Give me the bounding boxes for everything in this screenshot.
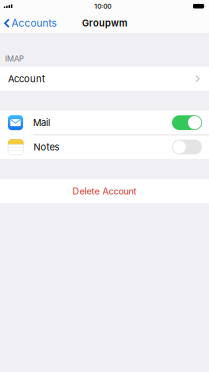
- button[interactable]: Delete Account: [0, 179, 209, 203]
- button[interactable]: Notes: [0, 135, 209, 159]
- button[interactable]: Mail: [0, 111, 209, 135]
- staticText: Notes: [34, 141, 60, 153]
- staticText: 10:00: [94, 2, 111, 10]
- staticText: Delete Account: [72, 186, 136, 197]
- staticText: Mail: [33, 117, 50, 128]
- button[interactable]: Accounts: [0, 14, 60, 32]
- staticText: Accounts: [11, 17, 56, 29]
- staticText: Account: [8, 73, 45, 84]
- button[interactable]: Account: [0, 67, 209, 91]
- staticText: Groupwm: [82, 18, 127, 29]
- staticText: IMAP: [5, 54, 24, 63]
